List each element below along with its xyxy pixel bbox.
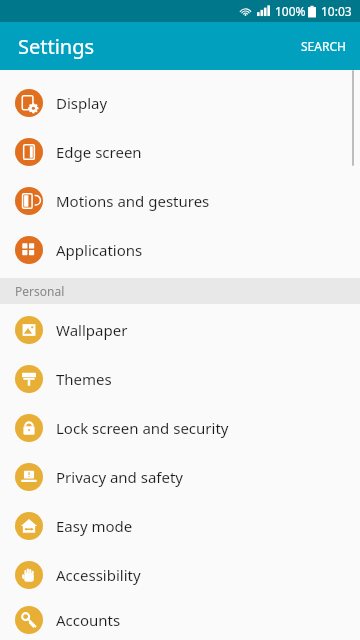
staticText: Themes — [56, 369, 112, 389]
button[interactable]: Display — [0, 78, 360, 127]
button[interactable]: Accessibility — [0, 550, 360, 599]
button[interactable]: Privacy and safety — [0, 452, 360, 501]
staticText: 10:03 — [321, 3, 352, 19]
button[interactable]: Easy mode — [0, 501, 360, 550]
staticText: Accounts — [56, 610, 121, 630]
staticText: Edge screen — [56, 142, 142, 162]
button[interactable]: Accounts — [0, 599, 360, 640]
staticText: 100% — [275, 3, 306, 19]
button[interactable]: Edge screen — [0, 127, 360, 176]
staticText: SEARCH — [301, 38, 346, 54]
staticText: Wallpaper — [56, 320, 128, 340]
staticText: Lock screen and security — [56, 418, 229, 438]
staticText: Personal — [15, 283, 65, 299]
staticText: Settings — [18, 33, 95, 60]
button[interactable]: Applications — [0, 225, 360, 274]
staticText: Accessibility — [56, 565, 141, 585]
button[interactable]: Themes — [0, 354, 360, 403]
staticText: Display — [56, 93, 108, 113]
button[interactable]: Lock screen and security — [0, 403, 360, 452]
staticText: Privacy and safety — [56, 467, 184, 487]
staticText: Motions and gestures — [56, 191, 210, 211]
button[interactable]: Motions and gestures — [0, 176, 360, 225]
staticText: Easy mode — [56, 516, 133, 536]
staticText: Applications — [56, 240, 143, 260]
button[interactable]: SEARCH — [287, 26, 360, 66]
button[interactable]: Wallpaper — [0, 305, 360, 354]
